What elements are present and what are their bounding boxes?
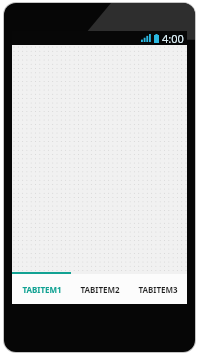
button[interactable]: TABITEM1 xyxy=(12,274,71,304)
button[interactable]: TABITEM2 xyxy=(71,274,129,304)
staticText: TABITEM3 xyxy=(138,284,178,295)
button[interactable]: TABITEM3 xyxy=(129,274,187,304)
staticText: TABITEM1 xyxy=(22,284,62,295)
staticText: 4:00 xyxy=(162,31,184,45)
other: Signal strength xyxy=(141,34,150,42)
staticText: TABITEM2 xyxy=(80,284,120,295)
other: Battery xyxy=(154,34,159,43)
